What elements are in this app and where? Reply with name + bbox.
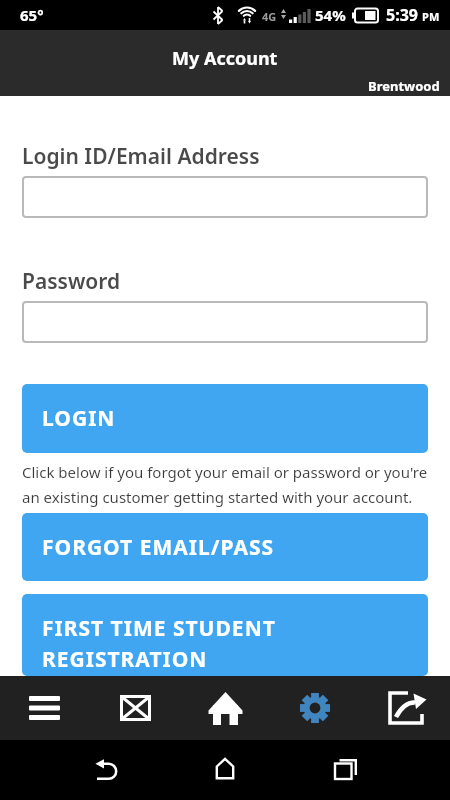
button[interactable]: FIRST TIME STUDENT REGISTRATION [22,594,428,676]
staticText: 54% [315,5,346,25]
button[interactable] [0,676,90,740]
staticText: LOGIN [42,404,116,433]
staticText: 65° [20,5,44,25]
button[interactable] [360,676,450,740]
button[interactable] [313,740,373,800]
button[interactable] [180,676,270,740]
button[interactable] [270,676,360,740]
staticText: My Account [172,46,278,71]
staticText: Password [22,267,121,296]
button[interactable]: FORGOT EMAIL/PASS [22,513,428,581]
button[interactable]: LOGIN [22,384,428,453]
staticText: Login ID/Email Address [22,142,260,171]
staticText: FIRST TIME STUDENT REGISTRATION [42,614,276,673]
staticText: 5:39 PM [386,4,440,26]
button[interactable] [22,301,428,343]
button[interactable] [22,176,428,218]
button[interactable] [76,740,136,800]
staticText: Click below if you forgot your email or … [22,462,428,507]
staticText: FORGOT EMAIL/PASS [42,533,275,562]
button[interactable] [195,740,255,800]
button[interactable] [90,676,180,740]
staticText: 4G [262,9,277,24]
staticText: Brentwood [368,77,440,95]
